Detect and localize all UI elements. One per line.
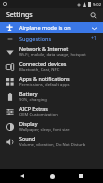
button[interactable]: Apps & notifications: [0, 74, 103, 89]
button[interactable]: Display: [0, 119, 103, 134]
staticText: Network & Internet: [19, 45, 69, 52]
staticText: OEM Customization: [19, 112, 58, 118]
staticText: Settings: [6, 10, 33, 20]
staticText: Bluetooth, Cast, NFC: [19, 67, 60, 73]
staticText: Airplane mode is on: [19, 24, 90, 31]
staticText: Apps & notifications: [19, 75, 70, 82]
staticText: Suggestions: [19, 35, 91, 42]
staticText: Wi-Fi, mobile, data usage, hotspot: [19, 52, 86, 58]
staticText: Wallpaper, sleep, font size: [19, 127, 70, 133]
button[interactable]: Home: [45, 169, 59, 183]
button[interactable]: Recents: [74, 169, 88, 183]
staticText: 9:02: [93, 2, 101, 7]
staticText: Permissions, default apps: [19, 82, 70, 88]
staticText: 90%, charging: [19, 97, 47, 103]
staticText: Sound: [19, 135, 36, 142]
staticText: Connected devices: [19, 60, 67, 67]
staticText: +1: [91, 35, 97, 42]
button[interactable]: Connected devices: [0, 59, 103, 74]
staticText: Display: [19, 120, 38, 127]
button[interactable]: Battery: [0, 89, 103, 104]
button[interactable]: AICP Extras: [0, 104, 103, 119]
staticText: Battery: [19, 90, 38, 97]
button[interactable]: Airplane mode is on: [0, 22, 103, 33]
button[interactable]: Search: [88, 10, 99, 21]
button[interactable]: Sound: [0, 134, 103, 149]
button[interactable]: Suggestions: [0, 33, 103, 44]
button[interactable]: Back: [15, 169, 29, 183]
staticText: AICP Extras: [19, 105, 48, 112]
staticText: Volume, vibration, Do Not Disturb: [19, 142, 86, 148]
button[interactable]: Network & Internet: [0, 44, 103, 59]
